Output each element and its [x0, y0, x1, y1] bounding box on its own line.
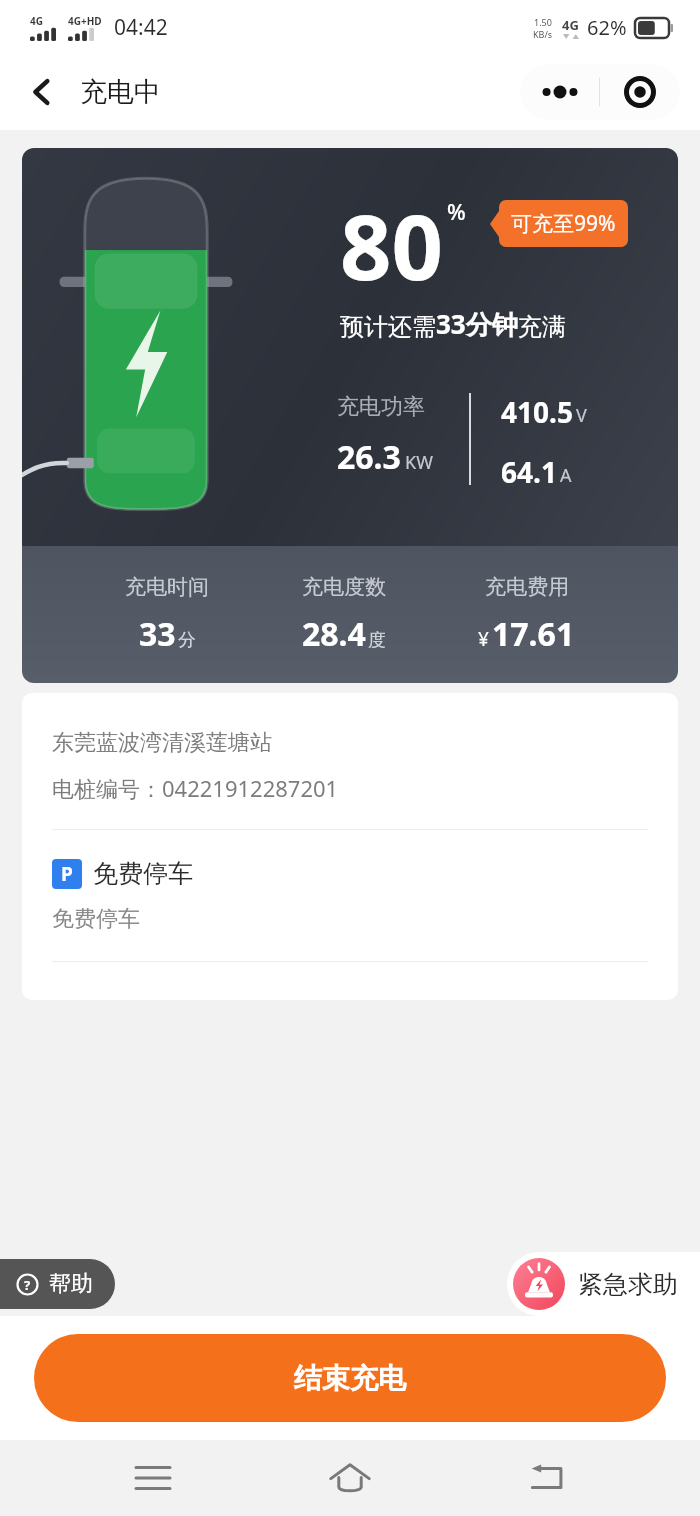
- staticText: KB/s: [533, 28, 553, 40]
- staticText: 64.1: [501, 453, 557, 491]
- staticText: 04:42: [114, 13, 168, 42]
- staticText: 充电功率: [337, 393, 425, 421]
- button[interactable]: 紧急求助: [507, 1252, 700, 1316]
- staticText: 4G: [562, 16, 579, 34]
- staticText: 可充至99%: [511, 209, 616, 238]
- staticText: 预计还需: [340, 312, 436, 342]
- staticText: 26.3: [337, 435, 401, 479]
- staticText: P: [61, 861, 73, 887]
- staticText: 免费停车: [93, 858, 193, 889]
- staticText: 17.61: [492, 612, 575, 656]
- staticText: 充电时间: [125, 574, 209, 600]
- staticText: 电桩编号：04221912287201: [52, 773, 339, 803]
- staticText: %: [447, 196, 466, 226]
- button[interactable]: More options: [520, 64, 599, 120]
- staticText: 410.5: [501, 393, 573, 431]
- staticText: 62%: [587, 14, 627, 41]
- staticText: 充满: [518, 312, 566, 342]
- staticText: ?: [24, 1276, 31, 1294]
- button[interactable]: 可充至99%: [499, 200, 628, 247]
- button[interactable]: Recents: [108, 1440, 198, 1516]
- staticText: 分: [178, 629, 196, 652]
- staticText: 充电费用: [485, 574, 569, 600]
- staticText: 4G+HD: [68, 14, 102, 28]
- staticText: KW: [405, 450, 433, 475]
- staticText: V: [576, 403, 587, 428]
- staticText: ¥: [478, 626, 489, 652]
- staticText: 28.4: [302, 612, 366, 656]
- staticText: 紧急求助: [578, 1269, 678, 1300]
- staticText: 免费停车: [52, 905, 140, 933]
- staticText: 33: [139, 612, 176, 656]
- staticText: 充电中: [80, 75, 161, 109]
- staticText: 度: [368, 629, 386, 652]
- button[interactable]: Close: [600, 64, 680, 120]
- staticText: 4G: [30, 14, 43, 28]
- staticText: 帮助: [49, 1270, 93, 1298]
- staticText: 80: [340, 184, 443, 307]
- button[interactable]: 结束充电: [34, 1334, 666, 1422]
- button[interactable]: Back: [503, 1440, 593, 1516]
- button[interactable]: Home: [305, 1440, 395, 1516]
- staticText: 33分钟: [436, 306, 518, 342]
- staticText: 东莞蓝波湾清溪莲塘站: [52, 729, 272, 757]
- staticText: 结束充电: [294, 1361, 406, 1396]
- staticText: 1.50: [534, 16, 552, 28]
- button[interactable]: Back: [14, 64, 70, 120]
- staticText: 充电度数: [302, 574, 386, 600]
- button[interactable]: ?: [0, 1259, 115, 1309]
- staticText: A: [560, 463, 572, 488]
